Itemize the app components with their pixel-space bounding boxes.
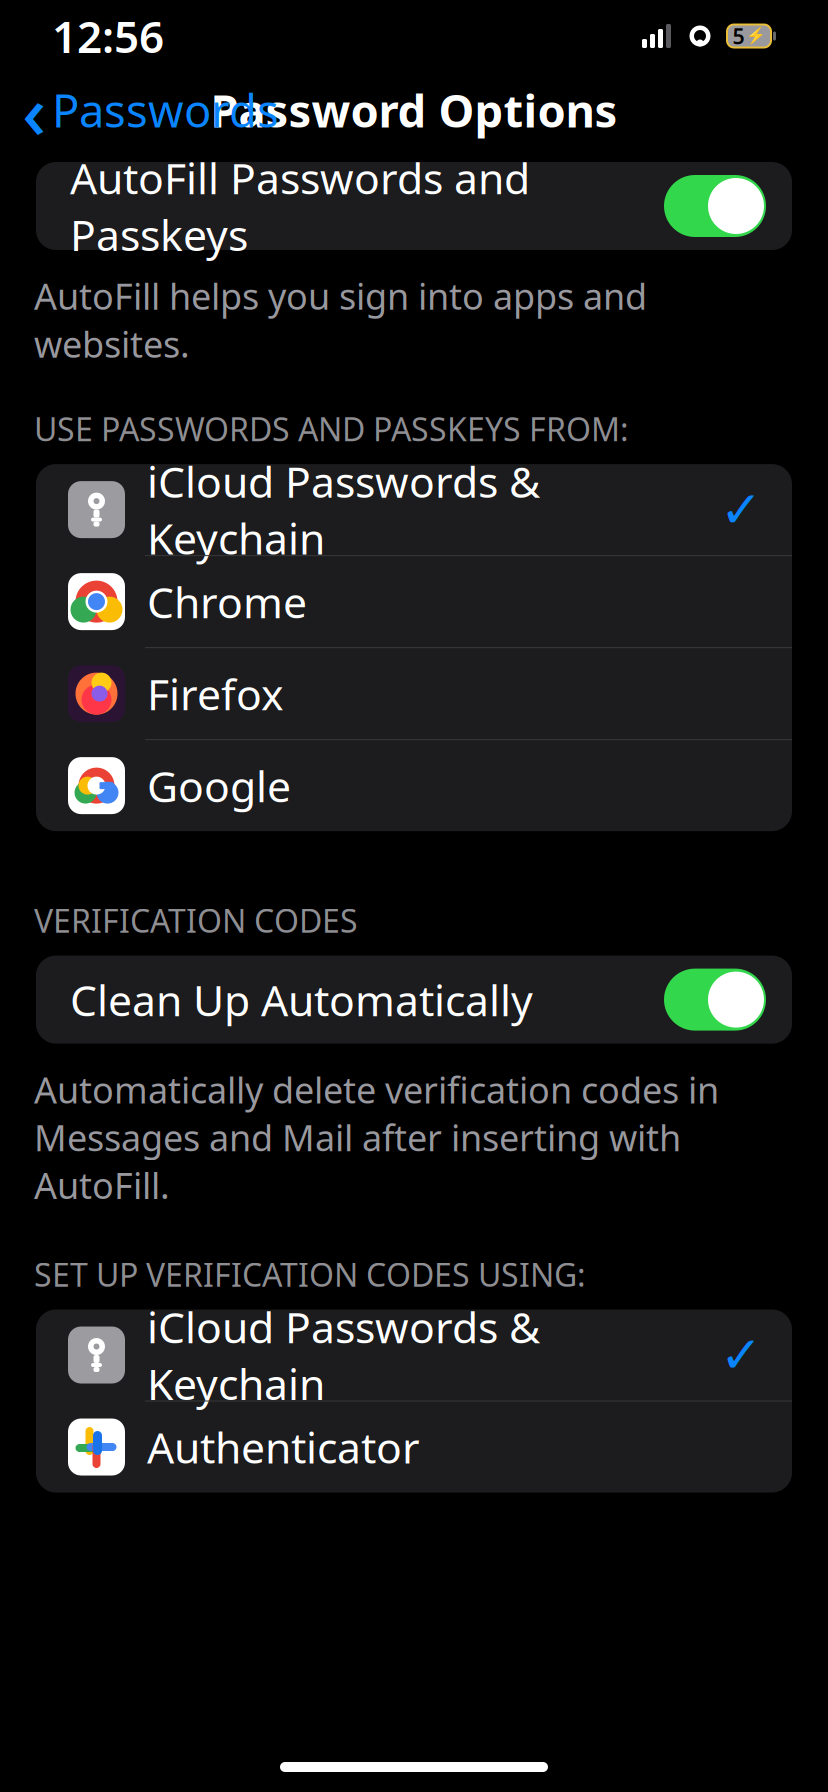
staticText: SET UP VERIFICATION CODES USING: bbox=[34, 1253, 586, 1295]
staticText: VERIFICATION CODES bbox=[34, 899, 358, 942]
staticText: USE PASSWORDS AND PASSKEYS FROM: bbox=[34, 408, 629, 450]
staticText: ✓ bbox=[720, 1326, 762, 1384]
button[interactable]: Clean Up Automatically bbox=[36, 956, 792, 1044]
staticText: AutoFill Passwords and Passkeys bbox=[70, 149, 530, 263]
button[interactable]: Google bbox=[36, 740, 792, 831]
staticText: ‹ bbox=[22, 60, 46, 160]
staticText: Automatically delete verification codes … bbox=[34, 1066, 719, 1209]
staticText: Password Options bbox=[210, 80, 617, 140]
staticText: Clean Up Automatically bbox=[70, 971, 533, 1028]
staticText: Chrome bbox=[147, 573, 307, 630]
button[interactable]: Authenticator bbox=[36, 1401, 792, 1492]
button[interactable]: iCloud Passwords & Keychain bbox=[36, 1309, 792, 1401]
button[interactable]: Firefox bbox=[36, 648, 792, 740]
staticText: Authenticator bbox=[147, 1419, 420, 1475]
staticText: Passwords bbox=[52, 80, 279, 140]
staticText: iCloud Passwords & Keychain bbox=[147, 1298, 540, 1412]
staticText: 12:56 bbox=[52, 7, 164, 65]
button[interactable]: Chrome bbox=[36, 556, 792, 648]
staticText: iCloud Passwords & Keychain bbox=[147, 453, 540, 566]
staticText: 5 bbox=[732, 22, 744, 50]
staticText: Firefox bbox=[147, 665, 284, 722]
button[interactable]: AutoFill Passwords and Passkeys bbox=[36, 162, 792, 250]
staticText: ⚡ bbox=[745, 27, 765, 45]
staticText: Google bbox=[147, 757, 291, 814]
button[interactable]: ‹ bbox=[0, 54, 279, 166]
button[interactable]: iCloud Passwords & Keychain bbox=[36, 464, 792, 556]
staticText: ✓ bbox=[720, 481, 762, 538]
staticText: AutoFill helps you sign into apps and we… bbox=[34, 272, 647, 368]
